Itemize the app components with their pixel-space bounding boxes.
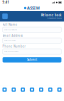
button[interactable]: Tab 3 xyxy=(18,85,27,94)
button[interactable]: Tab 4 xyxy=(27,85,36,94)
button[interactable]: Tab 6 xyxy=(46,85,55,94)
button[interactable]: Tab 2 xyxy=(9,85,18,94)
staticText: Full Name xyxy=(3,23,18,26)
button[interactable]: Submit xyxy=(3,57,61,62)
button[interactable]: Tab 7 xyxy=(55,85,64,94)
staticText: Complete the form below xyxy=(47,17,62,19)
staticText: Submit xyxy=(27,58,37,62)
staticText: Email Address xyxy=(3,34,23,37)
staticText: Phone Number xyxy=(3,45,26,48)
staticText: Enter your full name xyxy=(4,29,17,31)
staticText: Enter your email xyxy=(4,40,15,41)
button[interactable]: Tab 1 xyxy=(0,85,9,94)
staticText: ASSIM xyxy=(27,5,40,11)
staticText: Enter phone number xyxy=(4,51,19,52)
staticText: Welcome back xyxy=(41,13,62,17)
staticText: 9:41 xyxy=(2,1,9,4)
button[interactable]: Tab 5 xyxy=(37,85,46,94)
